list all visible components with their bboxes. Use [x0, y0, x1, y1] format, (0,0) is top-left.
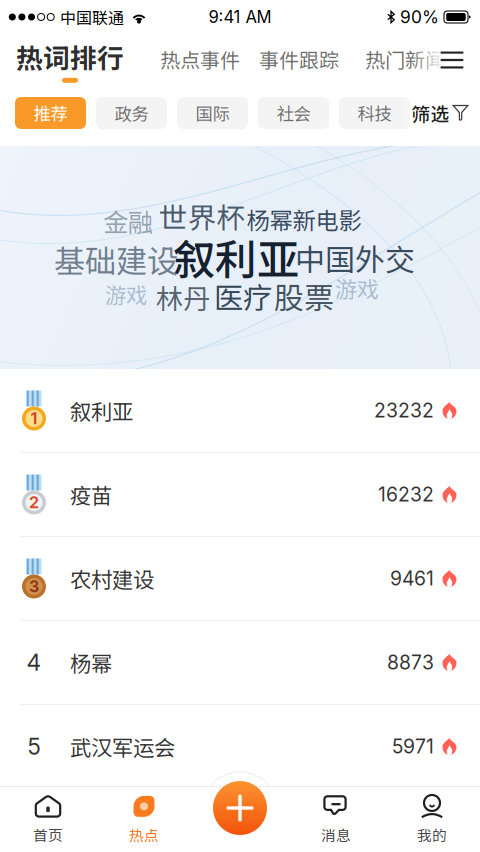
button[interactable]: 热门新闻 — [360, 37, 450, 81]
button[interactable]: 首页 — [0, 787, 96, 852]
staticText: 政务 — [114, 100, 148, 126]
staticText: 医疗 — [214, 275, 272, 317]
button[interactable]: 5 — [0, 705, 480, 788]
button[interactable]: 政务 — [96, 97, 167, 129]
staticText: 9:41 AM — [208, 7, 271, 27]
staticText: 杨幂 — [70, 647, 112, 678]
staticText: 90% — [400, 6, 439, 27]
staticText: 23232 — [374, 399, 434, 422]
button[interactable]: 4 — [0, 621, 480, 704]
staticText: 中国联通 — [60, 5, 124, 29]
staticText: 基础建设 — [54, 236, 178, 282]
staticText: 4 — [26, 649, 41, 676]
button[interactable]: 事件跟踪 — [254, 37, 344, 81]
staticText: 热门新闻 — [365, 44, 445, 73]
button[interactable]: 热点事件 — [155, 37, 245, 81]
staticText: 国际 — [195, 100, 229, 126]
staticText: 消息 — [321, 824, 351, 845]
staticText: 游戏 — [105, 279, 147, 309]
button[interactable]: 热点 — [96, 787, 192, 852]
staticText: 事件跟踪 — [259, 44, 339, 73]
staticText: 筛选 — [411, 99, 449, 126]
staticText: 热点 — [129, 824, 159, 845]
staticText: 5971 — [392, 735, 434, 758]
staticText: 林丹 — [156, 277, 210, 317]
staticText: 叙利亚 — [173, 227, 299, 287]
button[interactable]: 消息 — [288, 787, 384, 852]
staticText: 1 — [30, 409, 37, 428]
staticText: 杨幂新电影 — [246, 202, 361, 236]
staticText: 首页 — [33, 824, 63, 845]
button[interactable]: 国际 — [177, 97, 248, 129]
button[interactable]: 3 — [0, 537, 480, 620]
staticText: 科技 — [357, 100, 391, 126]
button[interactable]: 科技 — [339, 97, 410, 129]
staticText: 游戏 — [335, 272, 379, 304]
staticText: 8873 — [387, 651, 434, 674]
staticText: 16232 — [378, 483, 434, 506]
staticText: 2 — [29, 493, 39, 512]
staticText: 世界杯 — [158, 195, 245, 237]
staticText: 武汉军运会 — [70, 731, 175, 762]
staticText: 9461 — [390, 567, 434, 590]
staticText: 股票 — [274, 274, 334, 318]
button[interactable]: 推荐 — [15, 97, 86, 129]
button[interactable]: 社会 — [258, 97, 329, 129]
button[interactable]: 2 — [0, 453, 480, 536]
staticText: 5 — [27, 733, 40, 760]
staticText: 农村建设 — [70, 563, 154, 594]
staticText: 疫苗 — [70, 479, 112, 510]
button[interactable]: 1 — [0, 369, 480, 452]
staticText: 热点事件 — [160, 44, 240, 73]
staticText: 推荐 — [33, 100, 67, 126]
staticText: 我的 — [417, 824, 447, 845]
button[interactable]: 我的 — [384, 787, 480, 852]
staticText: 社会 — [276, 100, 310, 126]
staticText: 3 — [29, 577, 39, 596]
button[interactable]: Create — [213, 781, 267, 835]
button[interactable]: 热词排行 — [10, 37, 130, 83]
staticText: 金融 — [103, 203, 153, 239]
button[interactable]: 筛选 — [405, 92, 475, 134]
button[interactable]: Menu — [430, 32, 474, 88]
staticText: 叙利亚 — [70, 395, 133, 426]
staticText: 热词排行 — [16, 37, 124, 76]
staticText: 中国外交 — [295, 236, 415, 280]
